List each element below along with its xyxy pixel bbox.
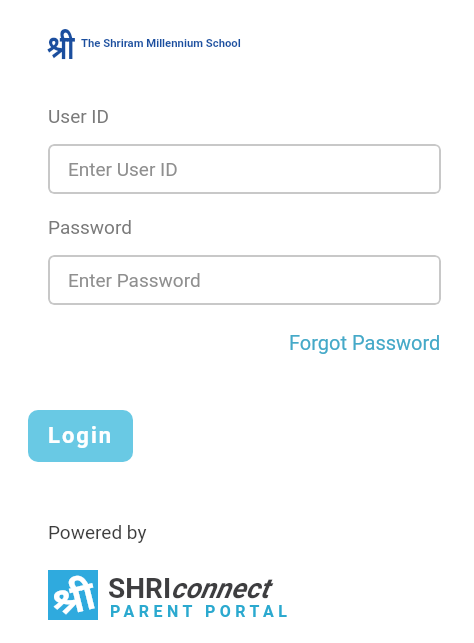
staticText: Powered by bbox=[48, 521, 147, 543]
button[interactable]: Enter User ID bbox=[48, 144, 441, 194]
button[interactable]: Enter Password bbox=[48, 255, 441, 305]
button[interactable] bbox=[40, 24, 240, 64]
staticText: The Shriram Millennium School bbox=[81, 37, 241, 50]
staticText: SHRIconnect bbox=[108, 572, 270, 605]
staticText: Password bbox=[48, 216, 132, 238]
button[interactable]: Forgot Password bbox=[289, 331, 441, 354]
button[interactable]: श्री bbox=[48, 570, 98, 620]
staticText: User ID bbox=[48, 105, 109, 127]
staticText: Enter User ID bbox=[68, 158, 178, 180]
staticText: Login bbox=[48, 423, 114, 449]
button[interactable]: Login bbox=[28, 410, 133, 462]
staticText: Enter Password bbox=[68, 269, 201, 291]
staticText: PARENT PORTAL bbox=[110, 602, 292, 621]
staticText: श्री bbox=[47, 23, 75, 70]
staticText: श्री bbox=[46, 565, 100, 625]
